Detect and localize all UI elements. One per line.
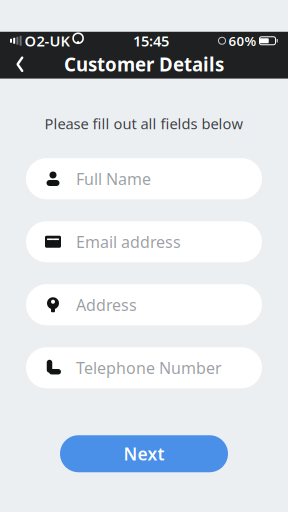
staticText: Please fill out all fields below [44,114,243,133]
button[interactable]: Full Name [26,158,262,199]
staticText: 15:45 [133,31,169,50]
staticText: Address [76,294,137,315]
staticText: Email address [76,231,181,252]
staticText: O2-UK [25,31,70,50]
staticText: Telephone Number [76,357,222,378]
button[interactable]: Address [26,284,262,325]
staticText: 60% [228,32,256,50]
staticText: Customer Details [64,52,224,77]
button[interactable]: Back [0,50,40,79]
staticText: Next [123,442,164,465]
staticText: Full Name [76,168,151,189]
button[interactable]: Email address [26,221,262,262]
button[interactable]: Next [60,435,228,472]
button[interactable]: Telephone Number [26,347,262,388]
